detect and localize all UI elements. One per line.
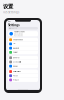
staticText: Focus: [13, 75, 18, 77]
staticText: Cellular: [13, 51, 18, 53]
button[interactable]: Focus: [8, 74, 38, 78]
button[interactable]: Privacy: [8, 78, 38, 82]
staticText: Airplane Mode: [13, 39, 23, 41]
staticText: Accessibility: [13, 61, 21, 63]
staticText: Search: [11, 27, 17, 29]
button[interactable]: Wi-Fi: [8, 42, 38, 46]
staticText: iOS Settings: [3, 10, 19, 14]
button[interactable]: Cellular: [8, 50, 38, 54]
button[interactable]: Airplane Mode: [8, 38, 38, 42]
button[interactable]: General: [8, 56, 38, 60]
button[interactable]: Notifications: [8, 69, 38, 73]
staticText: 9:41: [8, 20, 11, 22]
staticText: iCloud, Media & Purchases: [14, 33, 23, 36]
button[interactable]: Apple Account: [8, 31, 38, 36]
staticText: Privacy: [13, 79, 19, 81]
button[interactable]: Display: [8, 64, 38, 68]
staticText: 设置: [3, 3, 13, 10]
staticText: General: [13, 57, 19, 59]
staticText: Notifications: [13, 71, 21, 72]
button[interactable]: Bluetooth: [8, 46, 38, 50]
staticText: Settings: [8, 23, 19, 27]
staticText: Wi-Fi: [13, 43, 15, 45]
staticText: Bluetooth: [13, 47, 19, 49]
staticText: Display: [13, 65, 18, 67]
button[interactable]: Accessibility: [8, 60, 38, 64]
staticText: Apple Account: [14, 31, 25, 33]
